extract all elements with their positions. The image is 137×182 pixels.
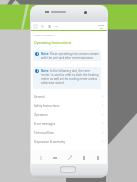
staticText: Home > Products > [34, 33, 56, 36]
button[interactable]: Technical Data [31, 128, 107, 137]
button[interactable]: Disposition & warranty [31, 137, 107, 146]
staticText: Note: These operating instructions remai… [41, 52, 99, 59]
button[interactable]: Bookmark [47, 24, 52, 29]
button[interactable]: Safety Instructions [31, 101, 107, 110]
staticText: Operating Instructions [34, 40, 72, 45]
staticText: i [37, 69, 38, 73]
button[interactable]: Error messages [31, 119, 107, 128]
staticText: General [34, 95, 45, 99]
staticText: Disposition & warranty [34, 140, 65, 144]
button[interactable]: Home [61, 167, 75, 172]
button[interactable]: Home [50, 153, 59, 162]
button[interactable]: Bookmark [79, 153, 88, 162]
staticText: Operation [34, 113, 48, 117]
staticText: Safety Instructions [34, 104, 60, 108]
staticText: Error messages [34, 122, 56, 126]
button[interactable]: General [31, 92, 107, 101]
staticText: TM [100, 27, 103, 29]
button[interactable]: Back [36, 153, 45, 162]
button[interactable]: Delete [93, 153, 102, 162]
button[interactable]: Share [65, 153, 74, 162]
button[interactable]: Menu [33, 24, 38, 29]
staticText: Technical Data [34, 131, 54, 135]
button[interactable]: Operation [31, 110, 107, 119]
button[interactable]: Search [40, 24, 45, 29]
staticText: Note: In the following text, the term 'm… [41, 69, 99, 85]
staticText: i [37, 52, 38, 56]
button[interactable]: More [54, 24, 59, 29]
staticText: LOGO [98, 24, 105, 27]
